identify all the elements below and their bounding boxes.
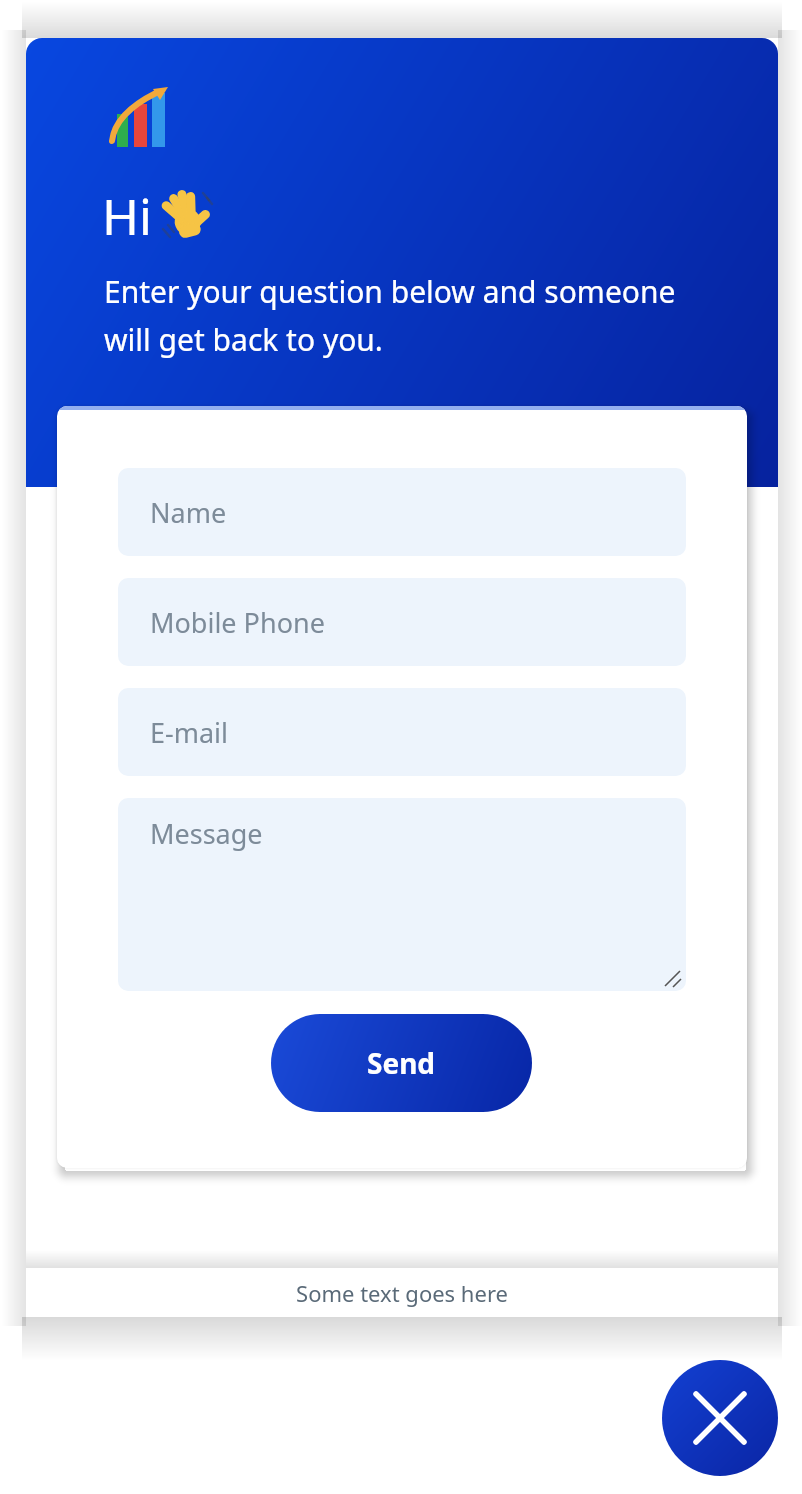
staticText: Enter your question below and someone wi…	[104, 271, 676, 359]
staticText: Send	[367, 1044, 436, 1082]
staticText: E-mail	[150, 714, 229, 751]
button[interactable]: E-mail	[118, 688, 686, 776]
button[interactable]	[662, 1360, 778, 1476]
button[interactable]: Mobile Phone	[118, 578, 686, 666]
button[interactable]: Name	[118, 468, 686, 556]
staticText: Message	[150, 815, 263, 852]
staticText: Hi	[102, 182, 152, 250]
staticText: Mobile Phone	[150, 604, 325, 641]
staticText: Some text goes here	[296, 1278, 508, 1308]
button[interactable]: Message	[118, 798, 686, 991]
staticText: Name	[150, 494, 227, 531]
button[interactable]: Send	[271, 1014, 532, 1112]
